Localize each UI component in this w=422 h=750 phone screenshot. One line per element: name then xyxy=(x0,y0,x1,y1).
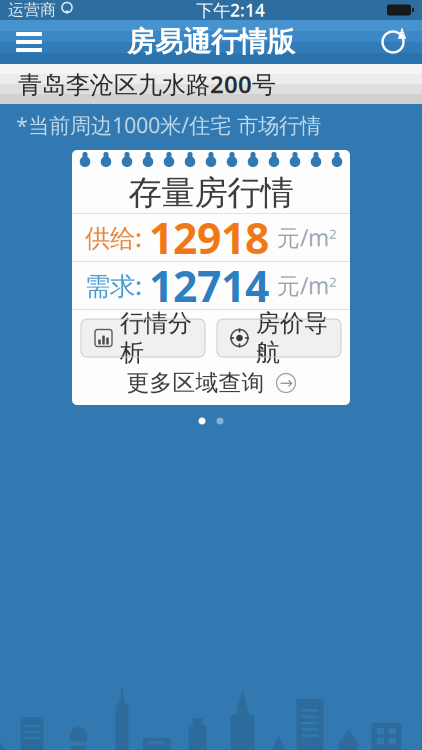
staticText: 更多区域查询 xyxy=(126,369,264,397)
button[interactable]: 更多区域查询 xyxy=(126,366,295,400)
button[interactable]: 行情分析 xyxy=(81,319,205,357)
button[interactable]: 房价导航 xyxy=(217,319,341,357)
staticText: 运营商 xyxy=(8,0,56,20)
staticText: 12918 xyxy=(149,209,269,266)
staticText: 元/m xyxy=(277,222,329,252)
staticText: 行情分析 xyxy=(120,308,192,367)
staticText: 12714 xyxy=(149,257,269,314)
staticText: 房价导航 xyxy=(256,308,328,367)
staticText: 需求: xyxy=(85,269,142,302)
staticText: 存量房行情 xyxy=(128,172,293,214)
button[interactable]: 菜单 xyxy=(0,20,58,64)
staticText: 下午2:14 xyxy=(196,0,265,21)
staticText: 2 xyxy=(329,225,337,242)
staticText: 元/m xyxy=(277,270,329,300)
staticText: 青岛李沧区九水路200号 xyxy=(18,68,276,100)
staticText: *当前周边1000米/住宅 市场行情 xyxy=(16,111,321,139)
staticText: → xyxy=(279,374,292,392)
staticText: 房易通行情版 xyxy=(127,25,295,59)
staticText: 2 xyxy=(329,273,337,290)
button[interactable]: 刷新 xyxy=(364,20,422,64)
staticText: 供给: xyxy=(85,221,142,254)
